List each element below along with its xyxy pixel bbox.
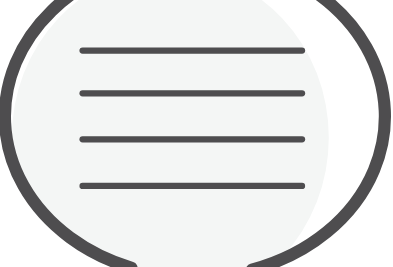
button[interactable]: Message bubble bbox=[0, 0, 393, 267]
